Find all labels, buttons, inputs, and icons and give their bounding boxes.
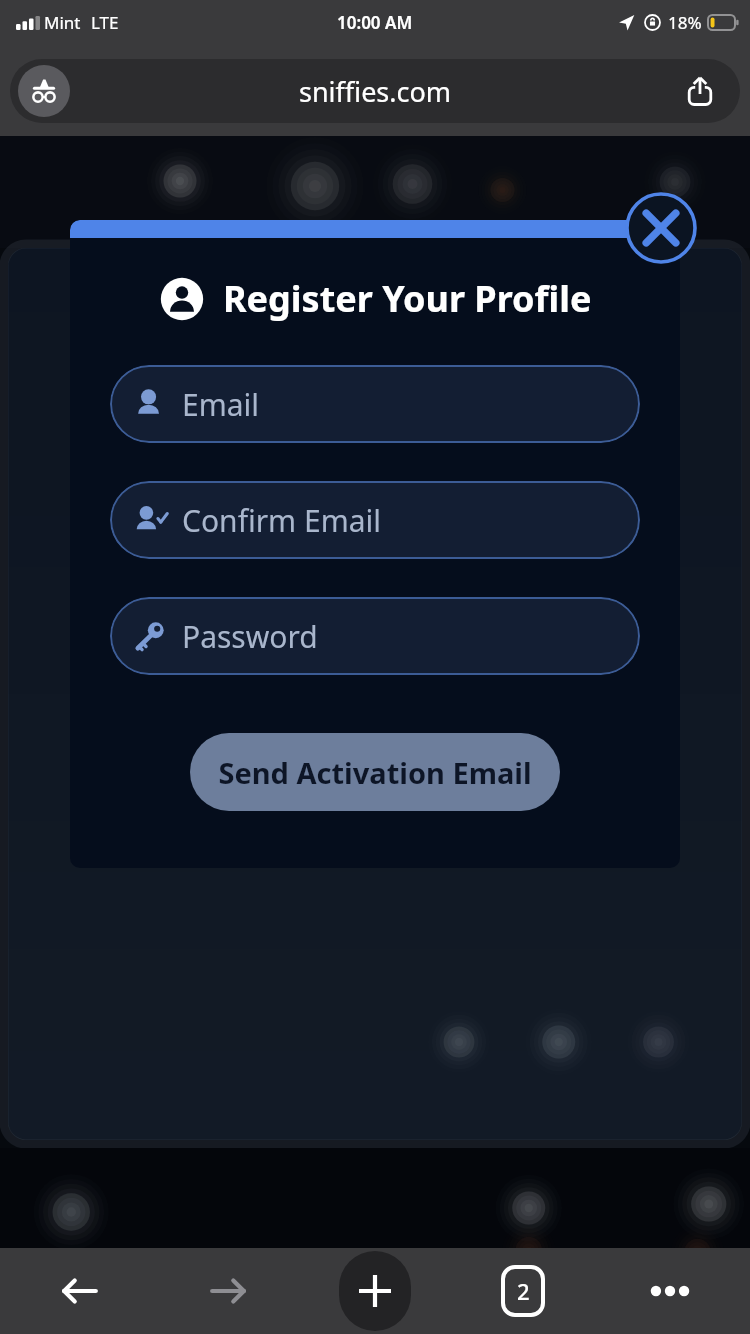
button[interactable]: New tab: [321, 1248, 429, 1334]
staticText: 2: [517, 1276, 530, 1306]
button[interactable]: Forward: [174, 1248, 282, 1334]
staticText: LTE: [91, 11, 119, 34]
staticText: Email: [182, 384, 260, 425]
staticText: Send Activation Email: [218, 753, 532, 792]
staticText: Mint: [44, 11, 81, 34]
button[interactable]: More: [616, 1248, 724, 1334]
button[interactable]: Back: [26, 1248, 134, 1334]
button[interactable]: Share: [678, 69, 722, 113]
button[interactable]: Password: [110, 597, 640, 675]
button[interactable]: Close: [624, 191, 698, 265]
button[interactable]: Confirm Email: [110, 481, 640, 559]
button[interactable]: Email: [110, 365, 640, 443]
button[interactable]: Private browsing: [18, 65, 70, 117]
staticText: sniffies.com: [299, 73, 452, 110]
button[interactable]: Tabs: [469, 1248, 577, 1334]
button[interactable]: Send Activation Email: [190, 733, 560, 811]
button[interactable]: Private browsing: [10, 59, 740, 123]
staticText: Register Your Profile: [223, 274, 592, 323]
staticText: Confirm Email: [182, 500, 381, 541]
staticText: Password: [182, 616, 318, 657]
staticText: 10:00 AM: [337, 11, 413, 34]
staticText: 18%: [668, 11, 702, 34]
